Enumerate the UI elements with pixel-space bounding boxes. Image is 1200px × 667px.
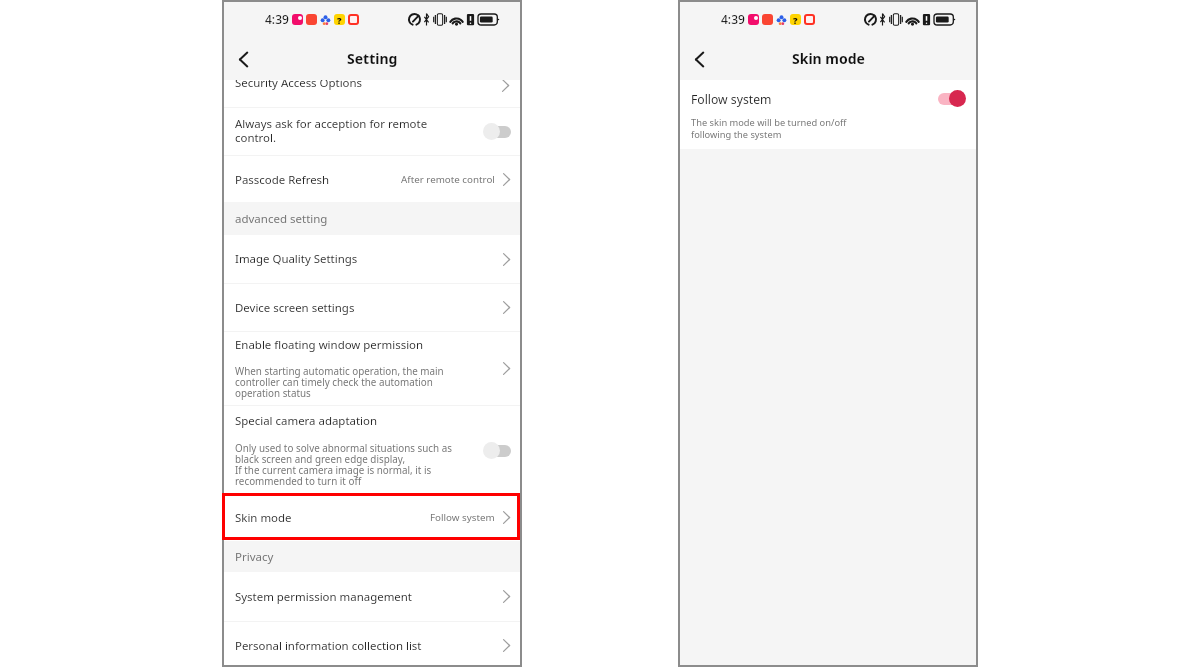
staticText: Skin mode	[792, 49, 865, 68]
button[interactable]: Passcode Refresh	[222, 156, 522, 202]
button[interactable]: Follow system	[678, 80, 978, 117]
button[interactable]: Always ask for acception for remote cont…	[222, 108, 522, 155]
staticText: Passcode Refresh	[235, 172, 330, 188]
staticText: Enable floating window permission	[235, 337, 424, 353]
button[interactable]: System permission management	[222, 572, 522, 621]
button[interactable]: Special camera adaptation	[222, 406, 522, 494]
button[interactable]: Skin mode	[222, 494, 522, 541]
staticText: Image Quality Settings	[235, 251, 358, 267]
staticText: Device screen settings	[235, 300, 355, 316]
staticText: Security Access Options	[235, 75, 363, 91]
staticText: 4:39	[265, 11, 289, 27]
staticText: Special camera adaptation	[235, 413, 377, 429]
staticText: Follow system	[691, 91, 772, 108]
button[interactable]: Switch off	[483, 442, 512, 459]
staticText: Always ask for acception for remote cont…	[235, 116, 428, 145]
button[interactable]: Security Access Options	[222, 80, 522, 107]
staticText: The skin mode will be turned on/off foll…	[691, 116, 847, 141]
staticText: ?	[793, 14, 798, 25]
staticText: System permission management	[235, 589, 412, 605]
button[interactable]: Switch on	[937, 90, 966, 107]
staticText: Personal information collection list	[235, 638, 422, 654]
staticText: ?	[337, 14, 342, 25]
staticText: Setting	[347, 49, 398, 68]
staticText: 4:39	[721, 11, 745, 27]
staticText: Privacy	[235, 549, 274, 565]
button[interactable]: Back	[226, 42, 260, 76]
staticText: Skin mode	[235, 510, 292, 526]
button[interactable]: Image Quality Settings	[222, 235, 522, 283]
staticText: When starting automatic operation, the m…	[235, 364, 444, 400]
staticText: Follow system	[430, 511, 495, 524]
staticText: Only used to solve abnormal situations s…	[235, 441, 452, 488]
button[interactable]: Personal information collection list	[222, 622, 522, 667]
staticText: advanced setting	[235, 211, 328, 227]
button[interactable]: Enable floating window permission	[222, 332, 522, 405]
button[interactable]: Device screen settings	[222, 284, 522, 331]
button[interactable]: Back	[682, 42, 716, 76]
button[interactable]: Switch off	[483, 123, 512, 140]
staticText: After remote control	[401, 173, 495, 186]
